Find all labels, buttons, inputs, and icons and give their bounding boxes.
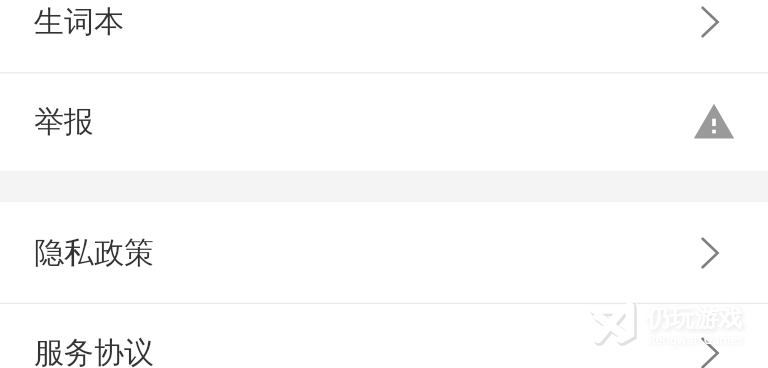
other: Open xyxy=(700,335,724,368)
other: Open xyxy=(700,4,724,40)
staticText: 举报 xyxy=(34,103,94,141)
staticText: 生词本 xyxy=(34,3,124,41)
button[interactable]: 生词本 xyxy=(0,0,768,72)
staticText: 服务协议 xyxy=(34,334,154,368)
button[interactable]: 举报 xyxy=(0,72,768,172)
other: Warning xyxy=(692,100,736,144)
staticText: 隐私政策 xyxy=(34,234,154,272)
button[interactable]: 服务协议 xyxy=(0,303,768,368)
other: Open xyxy=(700,235,724,271)
staticText: Rengwan Games xyxy=(648,331,743,347)
button[interactable]: 隐私政策 xyxy=(0,203,768,303)
staticText: 仍玩游戏 xyxy=(646,303,742,333)
